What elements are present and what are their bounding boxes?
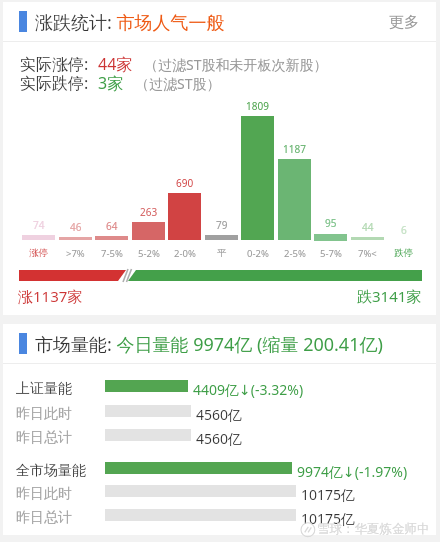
staticText: 263 bbox=[140, 205, 158, 219]
staticText: >7% bbox=[66, 247, 85, 260]
staticText: 1809 bbox=[246, 99, 269, 113]
button[interactable]: 昨日此时 bbox=[3, 402, 436, 426]
staticText: （过滤ST股） bbox=[135, 74, 221, 93]
staticText: 1187 bbox=[283, 142, 306, 156]
staticText: 全市场量能 bbox=[16, 462, 86, 480]
staticText: 46 bbox=[70, 220, 82, 234]
staticText: 昨日此时 bbox=[16, 485, 72, 503]
staticText: 昨日总计 bbox=[16, 429, 72, 447]
staticText: 690 bbox=[176, 176, 194, 190]
staticText: 5-7% bbox=[320, 247, 342, 260]
staticText: 雪球：华夏炼金师中 bbox=[317, 521, 430, 537]
staticText: 实际跌停: bbox=[20, 72, 89, 94]
staticText: 5-2% bbox=[138, 247, 160, 260]
staticText: 0-2% bbox=[247, 247, 269, 260]
staticText: 涨跌统计: 市场人气一般 bbox=[35, 10, 225, 35]
staticText: 2-5% bbox=[284, 247, 306, 260]
staticText: 涨1137家 bbox=[18, 286, 83, 306]
staticText: 10175亿 bbox=[301, 509, 356, 528]
staticText: 3家 bbox=[98, 72, 124, 94]
staticText: 更多 bbox=[389, 13, 419, 32]
staticText: 跌3141家 bbox=[357, 286, 422, 306]
staticText: 跌停 bbox=[394, 247, 413, 259]
staticText: 昨日此时 bbox=[16, 405, 72, 423]
staticText: 79 bbox=[216, 218, 228, 232]
staticText: 9974亿↓(-1.97%) bbox=[297, 462, 408, 481]
staticText: 4409亿↓(-3.32%) bbox=[193, 380, 304, 399]
staticText: 74 bbox=[33, 218, 45, 232]
staticText: 44 bbox=[362, 220, 374, 234]
staticText: 4560亿 bbox=[196, 405, 243, 424]
staticText: 7%< bbox=[358, 247, 377, 260]
button[interactable]: 昨日此时 bbox=[3, 482, 436, 506]
staticText: 4560亿 bbox=[196, 429, 243, 448]
staticText: 实际涨停: bbox=[20, 53, 89, 75]
button[interactable]: 昨日总计 bbox=[3, 426, 436, 450]
button[interactable]: 市场量能: 今日量能 9974亿 (缩量 200.41亿) bbox=[3, 324, 436, 365]
staticText: 95 bbox=[325, 216, 337, 230]
staticText: 昨日总计 bbox=[16, 509, 72, 527]
button[interactable]: 更多 bbox=[373, 2, 436, 43]
button[interactable]: 全市场量能 bbox=[3, 459, 436, 483]
button[interactable]: 昨日总计 bbox=[3, 506, 436, 530]
staticText: 涨停 bbox=[29, 247, 48, 259]
staticText: 10175亿 bbox=[301, 485, 356, 504]
staticText: 7-5% bbox=[101, 247, 123, 260]
staticText: 上证量能 bbox=[16, 380, 72, 398]
staticText: 市场量能: 今日量能 9974亿 (缩量 200.41亿) bbox=[35, 332, 383, 357]
staticText: 44家 bbox=[98, 53, 133, 75]
staticText: 平 bbox=[217, 247, 227, 259]
staticText: 2-0% bbox=[174, 247, 196, 260]
staticText: 64 bbox=[106, 219, 118, 233]
staticText: 6 bbox=[401, 223, 407, 237]
button[interactable]: 涨跌统计: 市场人气一般 bbox=[3, 2, 436, 43]
button[interactable]: 上证量能 bbox=[3, 377, 436, 401]
staticText: （过滤ST股和未开板次新股） bbox=[144, 55, 328, 74]
